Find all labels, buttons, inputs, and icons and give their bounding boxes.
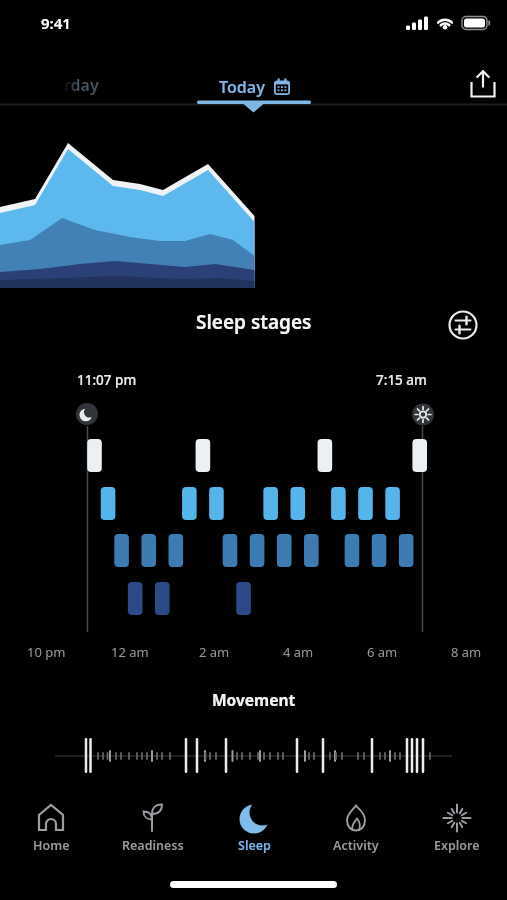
staticText: 12 am bbox=[111, 643, 149, 661]
button[interactable] bbox=[463, 63, 501, 101]
button[interactable]: Today bbox=[215, 72, 295, 102]
staticText: 7:15 am bbox=[376, 371, 427, 389]
staticText: 9:41 bbox=[41, 13, 71, 33]
staticText: 4 am bbox=[283, 643, 314, 661]
button[interactable]: Yesterday bbox=[14, 74, 107, 96]
staticText: 2 am bbox=[199, 643, 230, 661]
staticText: Sleep stages bbox=[196, 309, 312, 335]
button[interactable]: Sleep bbox=[204, 790, 305, 872]
staticText: Readiness bbox=[122, 837, 184, 854]
staticText: Explore bbox=[434, 837, 480, 854]
button[interactable]: Explore bbox=[406, 790, 507, 872]
staticText: 10 pm bbox=[27, 643, 66, 661]
staticText: 6 am bbox=[367, 643, 398, 661]
staticText: Activity bbox=[333, 837, 379, 854]
staticText: Movement bbox=[212, 689, 296, 710]
staticText: 8 am bbox=[451, 643, 482, 661]
button[interactable]: Readiness bbox=[102, 790, 204, 872]
staticText: 11:07 pm bbox=[77, 371, 137, 389]
button[interactable]: Activity bbox=[305, 790, 406, 872]
button[interactable]: Home bbox=[0, 790, 102, 872]
staticText: Today bbox=[219, 76, 266, 98]
button[interactable] bbox=[447, 309, 479, 341]
staticText: Yesterday bbox=[22, 74, 99, 96]
staticText: Sleep bbox=[238, 837, 271, 854]
staticText: Home bbox=[33, 837, 70, 854]
